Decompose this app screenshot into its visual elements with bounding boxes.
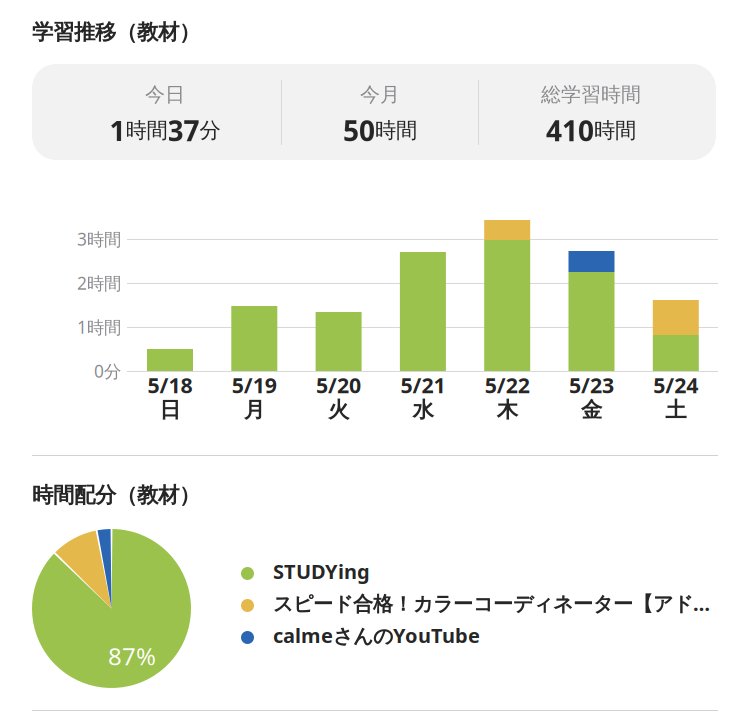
button[interactable]: STUDYing — [241, 558, 721, 588]
staticText: 時間 — [594, 117, 636, 144]
staticText: 学習推移（教材） — [32, 19, 200, 45]
staticText: スピード合格！カラーコーディネーター【アド… — [273, 590, 710, 617]
staticText: 3時間 — [77, 227, 121, 250]
staticText: 金 — [581, 397, 602, 423]
button[interactable]: 今月 — [282, 64, 478, 160]
staticText: 今日 — [145, 82, 185, 107]
staticText: 時間配分（教材） — [32, 482, 200, 508]
staticText: STUDYing — [273, 558, 370, 585]
staticText: 0分 — [94, 359, 121, 382]
staticText: 410 — [546, 112, 594, 149]
staticText: 総学習時間 — [541, 82, 641, 107]
staticText: 土 — [665, 397, 686, 423]
staticText: 87% — [108, 640, 156, 672]
staticText: 時間 — [375, 117, 417, 144]
staticText: 50 — [343, 112, 375, 149]
staticText: 分 — [199, 117, 220, 144]
button[interactable]: スピード合格！カラーコーディネーター【アド… — [241, 590, 721, 620]
staticText: 時間 — [125, 117, 167, 144]
staticText: 5/19 — [232, 371, 277, 399]
staticText: 5/18 — [147, 371, 192, 399]
staticText: 5/23 — [569, 371, 614, 399]
button[interactable]: 今日 — [32, 64, 298, 160]
staticText: 水 — [412, 397, 433, 423]
staticText: 日 — [159, 397, 180, 423]
staticText: 5/24 — [653, 371, 698, 399]
staticText: 木 — [497, 397, 518, 423]
staticText: 月 — [244, 397, 265, 423]
staticText: 37 — [167, 112, 199, 149]
staticText: calmeさんのYouTube — [273, 622, 480, 649]
staticText: 今月 — [360, 82, 400, 107]
button[interactable]: calmeさんのYouTube — [241, 622, 721, 652]
staticText: 火 — [328, 397, 349, 423]
staticText: 5/21 — [400, 371, 445, 399]
staticText: 2時間 — [77, 271, 121, 294]
staticText: 5/22 — [485, 371, 530, 399]
button[interactable]: 総学習時間 — [478, 64, 704, 160]
staticText: 5/20 — [316, 371, 361, 399]
staticText: 1 — [109, 112, 125, 149]
staticText: 1時間 — [77, 315, 121, 338]
